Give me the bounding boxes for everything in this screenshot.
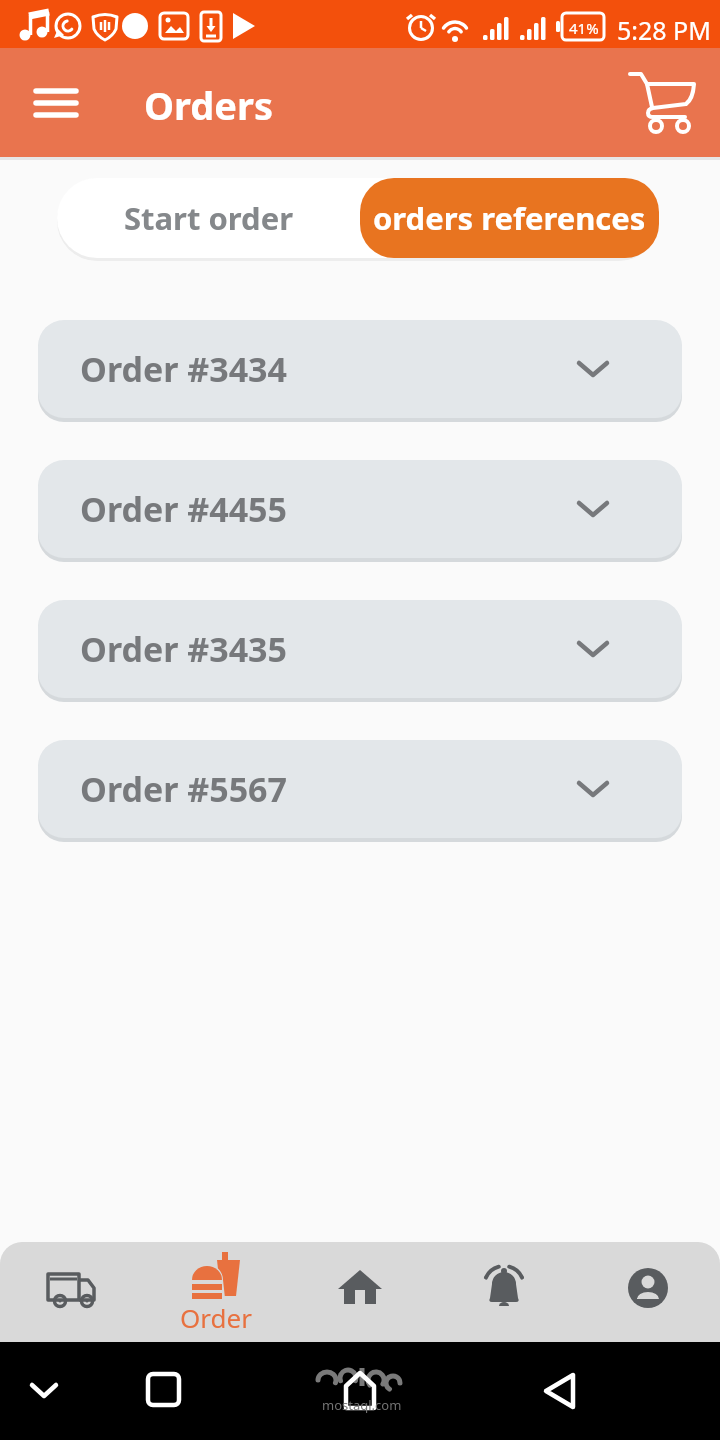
- staticText: orders references: [373, 197, 646, 239]
- button[interactable]: Order: [144, 1242, 288, 1342]
- staticText: 41%: [569, 18, 599, 38]
- staticText: Order #3435: [80, 626, 287, 672]
- staticText: mostaql.com: [322, 1396, 402, 1414]
- button[interactable]: [620, 62, 706, 146]
- button[interactable]: [576, 1242, 720, 1342]
- button[interactable]: Start order: [57, 178, 360, 258]
- staticText: Order #3434: [80, 346, 287, 392]
- staticText: Orders: [144, 79, 274, 131]
- staticText: Order #4455: [80, 486, 287, 532]
- staticText: 5:28 PM: [617, 13, 711, 47]
- staticText: Order #5567: [80, 766, 287, 812]
- button[interactable]: Order #5567: [38, 740, 682, 838]
- staticText: Order: [180, 1300, 252, 1335]
- button[interactable]: [288, 1242, 432, 1342]
- button[interactable]: [24, 78, 88, 128]
- button[interactable]: [0, 1242, 144, 1342]
- button[interactable]: Order #3435: [38, 600, 682, 698]
- button[interactable]: Order #4455: [38, 460, 682, 558]
- button[interactable]: Order #3434: [38, 320, 682, 418]
- button[interactable]: orders references: [360, 178, 659, 258]
- button[interactable]: [432, 1242, 576, 1342]
- staticText: Start order: [124, 197, 294, 239]
